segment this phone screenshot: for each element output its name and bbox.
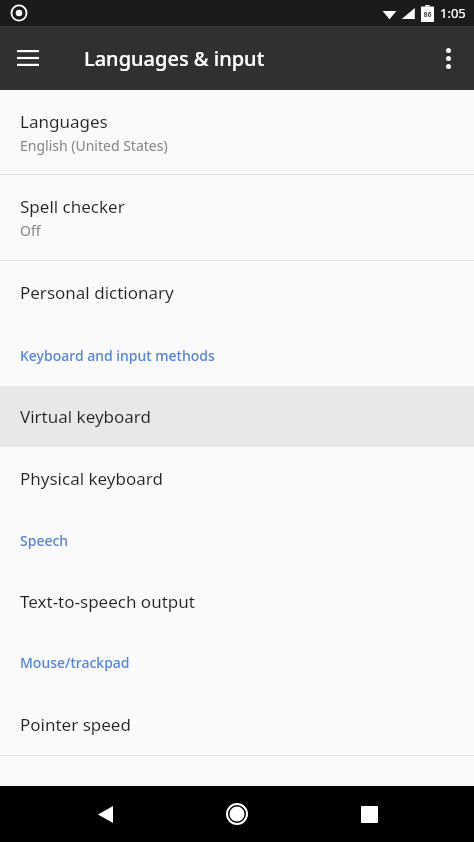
staticText: 86 [423, 10, 432, 20]
button[interactable]: Personal dictionary [0, 261, 474, 324]
button[interactable]: Home [212, 789, 262, 839]
staticText: Virtual keyboard [20, 405, 152, 428]
staticText: Spell checker [20, 195, 125, 218]
staticText: Pointer speed [20, 713, 131, 736]
button[interactable]: Virtual keyboard [0, 386, 474, 447]
staticText: Keyboard and input methods [20, 346, 215, 365]
button[interactable]: Text-to-speech output [0, 571, 474, 632]
staticText: English (United States) [20, 136, 168, 155]
staticText: Personal dictionary [20, 281, 174, 304]
button[interactable]: Open navigation drawer [0, 30, 56, 86]
button[interactable]: Spell checker [0, 175, 474, 260]
staticText: Languages & input [84, 45, 265, 72]
staticText: 1:05 [440, 4, 466, 22]
staticText: Off [20, 221, 41, 240]
button[interactable]: Languages [0, 90, 474, 174]
staticText: Mouse/trackpad [20, 653, 130, 672]
staticText: Languages [20, 110, 108, 133]
staticText: Physical keyboard [20, 467, 163, 490]
button[interactable]: Back [80, 789, 130, 839]
button[interactable]: Pointer speed [0, 693, 474, 755]
staticText: Text-to-speech output [20, 590, 195, 613]
button[interactable]: More options [422, 32, 474, 84]
button[interactable]: Recent apps [344, 789, 394, 839]
staticText: Speech [20, 531, 69, 550]
button[interactable]: Physical keyboard [0, 447, 474, 510]
